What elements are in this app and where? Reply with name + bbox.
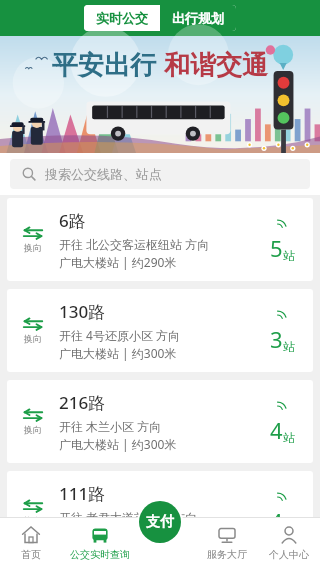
button[interactable]: 支付 <box>139 501 181 543</box>
button[interactable]: 换向 <box>7 408 59 435</box>
staticText: 实时公交 <box>96 10 148 26</box>
staticText: 216路 <box>59 391 106 414</box>
button[interactable]: 首页 <box>0 517 61 569</box>
staticText: 站 <box>283 339 295 354</box>
button[interactable]: 换向 <box>7 226 59 253</box>
staticText: 站 <box>283 430 295 445</box>
button[interactable]: 搜索公交线路、站点 <box>10 159 310 189</box>
staticText: 3 <box>270 324 283 354</box>
button[interactable]: 换向 <box>7 317 59 344</box>
staticText: 4 <box>270 506 283 536</box>
staticText: 4 <box>270 415 283 445</box>
button[interactable]: 实时公交 <box>84 5 160 31</box>
staticText: 出行规划 <box>172 10 224 26</box>
staticText: 换向 <box>24 424 42 435</box>
staticText: 6路 <box>59 209 86 232</box>
button[interactable]: 换向 <box>7 471 313 554</box>
button[interactable]: 公交实时查询 <box>61 517 138 569</box>
staticText: 平安出行 <box>52 49 156 82</box>
staticText: 换向 <box>24 242 42 253</box>
staticText: 服务大厅 <box>207 548 247 561</box>
staticText: 个人中心 <box>269 548 309 561</box>
staticText: 首页 <box>21 548 41 561</box>
staticText: 和谐交通 <box>164 49 268 82</box>
staticText: 站 <box>283 521 295 536</box>
button[interactable]: 出行规划 <box>160 5 236 31</box>
button[interactable]: 换向 <box>7 380 313 463</box>
staticText: 开往 4号还原小区 方向 <box>59 327 181 343</box>
button[interactable]: 换向 <box>7 499 59 526</box>
staticText: 站 <box>283 248 295 263</box>
staticText: 换向 <box>24 333 42 344</box>
staticText: 开往 木兰小区 方向 <box>59 418 162 434</box>
staticText: 广电大楼站 | 约300米 <box>59 345 177 361</box>
staticText: 广电大楼站 | 约300米 <box>59 527 177 543</box>
button[interactable]: 换向 <box>7 289 313 372</box>
staticText: 搜索公交线路、站点 <box>45 166 162 182</box>
button[interactable]: 个人中心 <box>258 517 320 569</box>
staticText: 广电大楼站 | 约290米 <box>59 254 177 270</box>
staticText: 5 <box>270 233 283 263</box>
staticText: 换向 <box>24 515 42 526</box>
staticText: 开往 老君大道首末站 方向 <box>59 509 198 525</box>
staticText: 广电大楼站 | 约300米 <box>59 436 177 452</box>
staticText: 111路 <box>59 482 106 505</box>
staticText: 130路 <box>59 300 106 323</box>
staticText: 公交实时查询 <box>70 548 130 561</box>
staticText: 开往 北公交客运枢纽站 方向 <box>59 236 210 252</box>
button[interactable]: 换向 <box>7 198 313 281</box>
button[interactable]: 服务大厅 <box>196 517 258 569</box>
staticText: 支付 <box>146 513 174 531</box>
